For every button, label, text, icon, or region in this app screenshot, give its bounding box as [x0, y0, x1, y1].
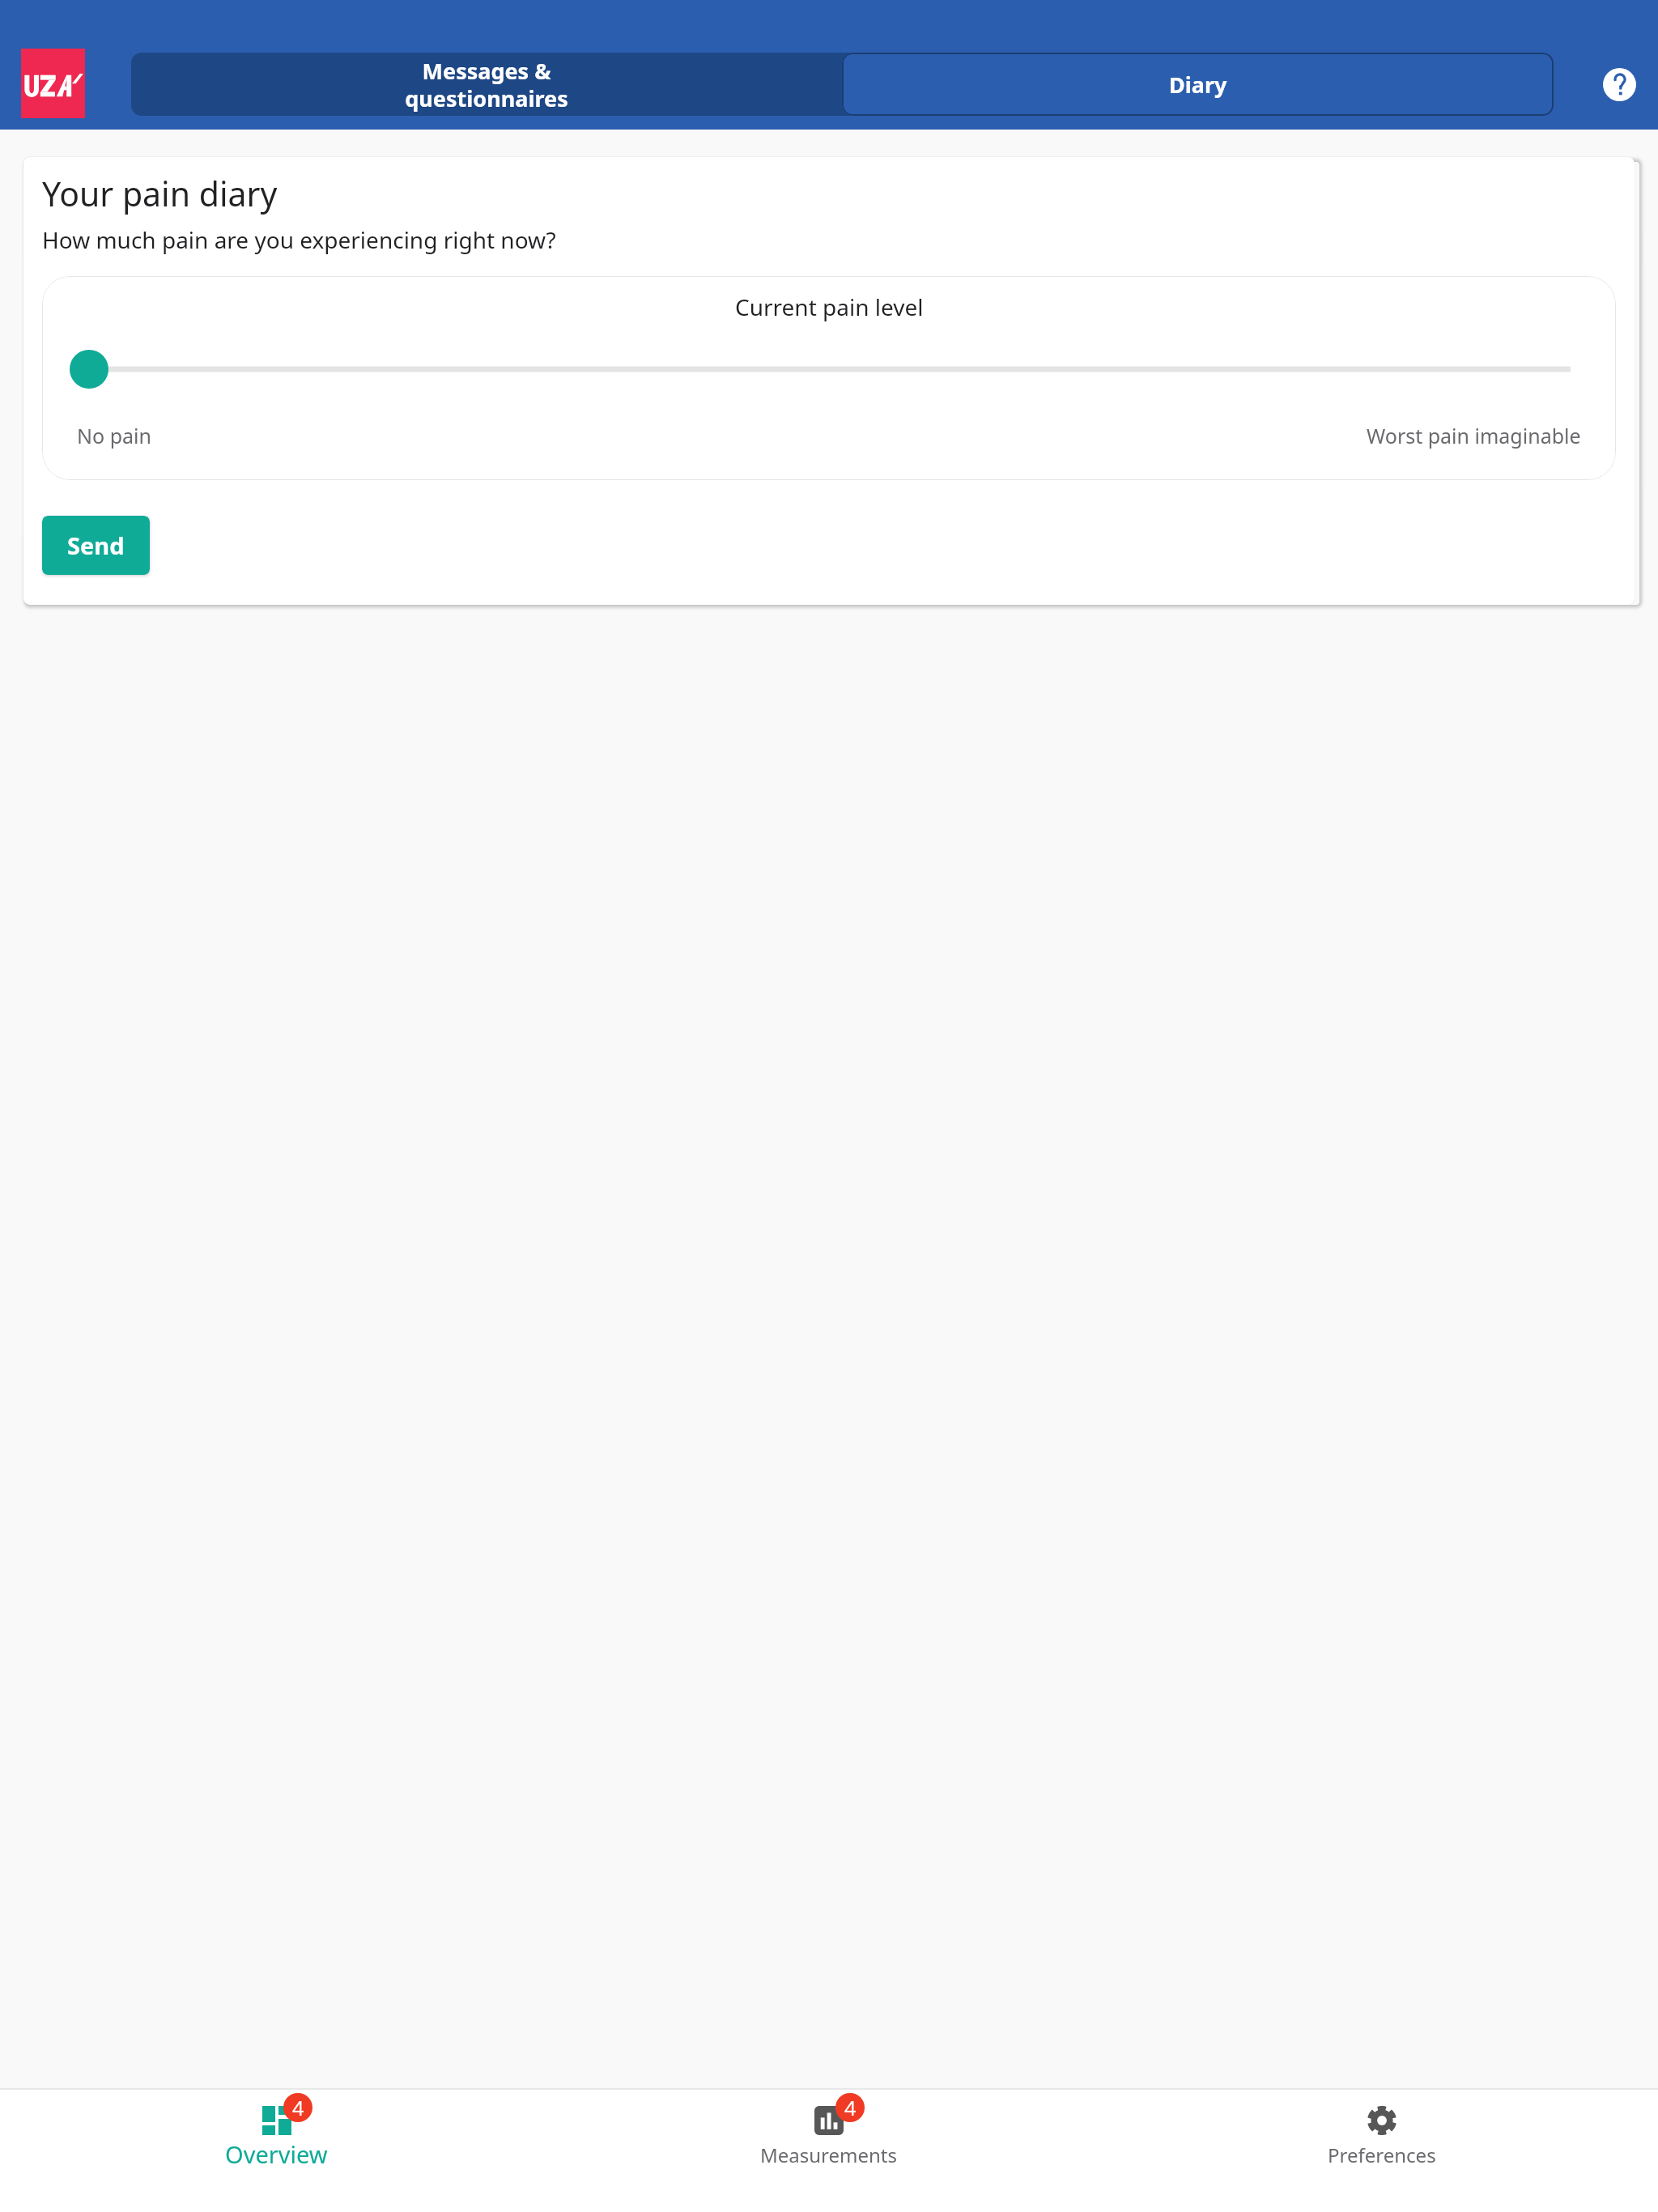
staticText: Messages & questionnaires: [405, 56, 568, 113]
staticText: Worst pain imaginable: [1367, 422, 1581, 449]
button[interactable]: Send: [42, 516, 150, 575]
staticText: No pain: [77, 422, 151, 449]
button[interactable]: 4: [552, 2090, 1105, 2212]
staticText: Overview: [225, 2138, 328, 2170]
staticText: Current pain level: [735, 291, 924, 322]
button[interactable]: Preferences: [1105, 2090, 1658, 2212]
staticText: 4: [292, 2094, 304, 2121]
staticText: Diary: [1169, 70, 1227, 100]
button[interactable]: 4: [0, 2090, 552, 2212]
staticText: 4: [844, 2094, 857, 2121]
button[interactable]: Diary: [842, 53, 1554, 116]
staticText: How much pain are you experiencing right…: [42, 224, 556, 255]
staticText: Measurements: [760, 2142, 898, 2168]
button[interactable]: Messages & questionnaires: [131, 53, 842, 116]
button[interactable]: UZA home: [21, 49, 85, 118]
staticText: Your pain diary: [42, 171, 278, 216]
staticText: Preferences: [1328, 2142, 1436, 2168]
button[interactable]: Help: [1603, 68, 1636, 101]
staticText: Send: [67, 530, 125, 561]
